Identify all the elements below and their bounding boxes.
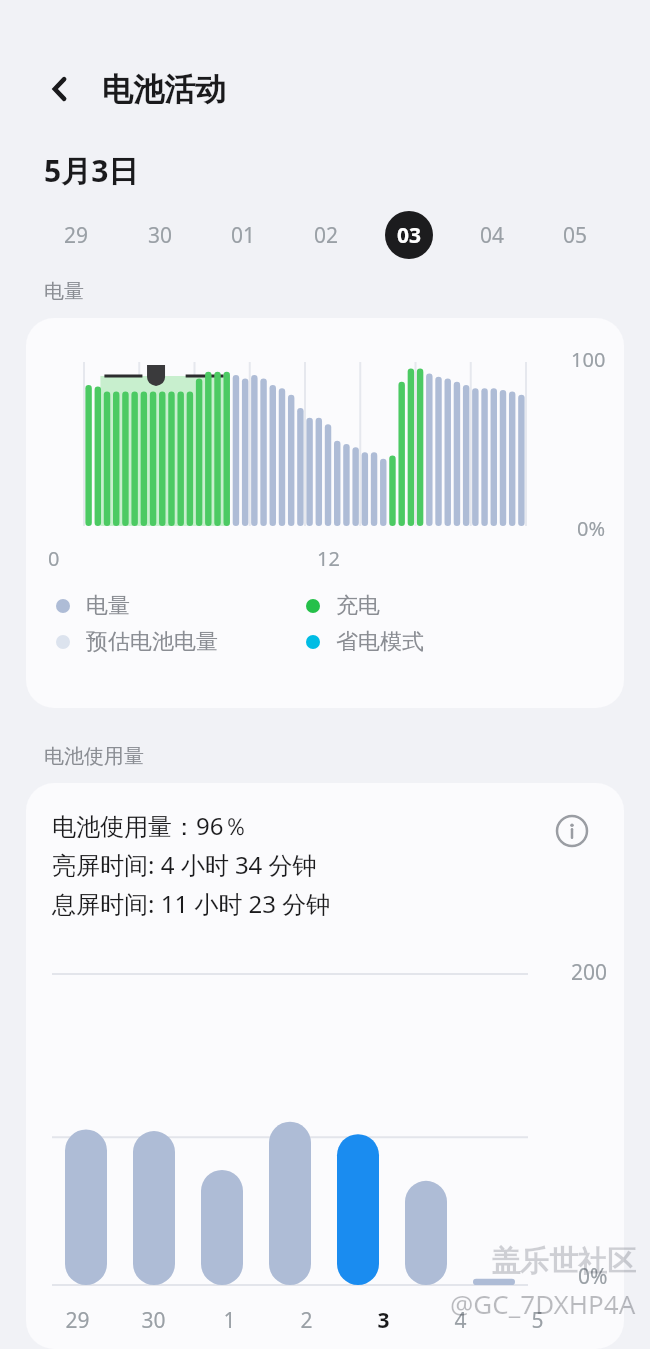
staticText: 30 (148, 221, 173, 250)
staticText: 05 (563, 221, 588, 250)
staticText: 12 (317, 545, 340, 572)
staticText: 01 (231, 221, 256, 250)
staticText: @GC_7DXHP4A (450, 1286, 636, 1321)
staticText: 200 (571, 958, 608, 987)
staticText: 1 (223, 1306, 236, 1335)
staticText: 0 (48, 545, 60, 572)
staticText: 0% (577, 515, 606, 542)
staticText: 30 (141, 1306, 166, 1335)
staticText: 5月3日 (44, 150, 139, 191)
staticText: 预估电池电量 (86, 628, 218, 656)
button[interactable]: 03 (367, 209, 450, 261)
staticText: 02 (314, 221, 339, 250)
staticText: 29 (65, 1306, 90, 1335)
button[interactable]: 100 (26, 318, 624, 708)
staticText: 电量 (86, 592, 130, 620)
button[interactable]: 05 (533, 209, 616, 261)
button[interactable]: 01 (201, 209, 284, 261)
staticText: 0% (578, 1262, 608, 1291)
button[interactable]: Back (40, 69, 80, 109)
staticText: 亮屏时间: 4 小时 34 分钟 (52, 848, 317, 881)
staticText: 电量 (44, 279, 84, 304)
staticText: 29 (64, 221, 89, 250)
staticText: 3 (377, 1306, 390, 1335)
staticText: 100 (571, 346, 606, 373)
staticText: 息屏时间: 11 小时 23 分钟 (52, 887, 331, 920)
button[interactable]: Info (552, 811, 592, 851)
staticText: 电池使用量 (44, 744, 144, 769)
staticText: 5 (531, 1306, 544, 1335)
staticText: 04 (480, 221, 505, 250)
button[interactable]: 29 (34, 209, 118, 261)
staticText: 4 (454, 1306, 467, 1335)
staticText: 03 (397, 221, 422, 250)
staticText: 2 (300, 1306, 313, 1335)
button[interactable]: 04 (450, 209, 533, 261)
button[interactable]: 30 (118, 209, 201, 261)
staticText: 省电模式 (336, 628, 424, 656)
staticText: 电池使用量：96％ (52, 809, 248, 842)
staticText: 电池活动 (102, 70, 226, 109)
button[interactable]: 02 (284, 209, 367, 261)
staticText: 充电 (336, 592, 380, 620)
button[interactable]: 电池使用量：96％ (26, 783, 624, 1349)
staticText: 盖乐世社区 (491, 1243, 636, 1280)
